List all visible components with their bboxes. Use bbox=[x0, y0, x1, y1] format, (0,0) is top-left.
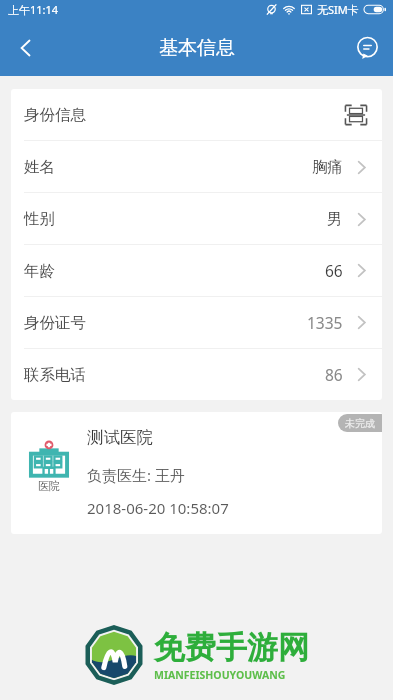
staticText: 上午11:14 bbox=[8, 2, 59, 17]
button[interactable]: Messages bbox=[341, 22, 393, 74]
button[interactable]: 姓名 bbox=[11, 141, 382, 192]
button[interactable]: Back bbox=[0, 22, 52, 74]
button[interactable]: 身份信息 bbox=[11, 89, 382, 140]
staticText: 身份信息 bbox=[24, 105, 86, 125]
staticText: 医院 bbox=[38, 479, 60, 493]
staticText: 测试医院 bbox=[87, 427, 153, 448]
button[interactable]: 身份证号 bbox=[11, 297, 382, 348]
staticText: 性别 bbox=[24, 209, 55, 229]
staticText: 66 bbox=[325, 260, 343, 281]
other: Scan ID card bbox=[343, 102, 369, 128]
staticText: 86 bbox=[325, 364, 343, 385]
staticText: 未完成 bbox=[345, 417, 375, 430]
staticText: 身份证号 bbox=[24, 313, 86, 333]
staticText: 年龄 bbox=[24, 261, 55, 281]
staticText: 2018-06-20 10:58:07 bbox=[87, 498, 229, 518]
staticText: 无SIM卡 bbox=[317, 2, 359, 17]
staticText: 免费手游网 bbox=[154, 628, 309, 667]
staticText: 姓名 bbox=[24, 157, 55, 177]
button[interactable]: 未完成 bbox=[11, 412, 382, 534]
staticText: 基本信息 bbox=[159, 36, 235, 60]
staticText: 胸痛 bbox=[312, 157, 343, 177]
staticText: 男 bbox=[327, 209, 343, 229]
staticText: 1335 bbox=[307, 312, 343, 333]
button[interactable]: 联系电话 bbox=[11, 349, 382, 400]
button[interactable]: 性别 bbox=[11, 193, 382, 244]
button[interactable]: 年龄 bbox=[11, 245, 382, 296]
staticText: MIANFEISHOUYOUWANG bbox=[154, 668, 286, 682]
staticText: 负责医生: 王丹 bbox=[87, 465, 185, 485]
staticText: 联系电话 bbox=[24, 365, 86, 385]
